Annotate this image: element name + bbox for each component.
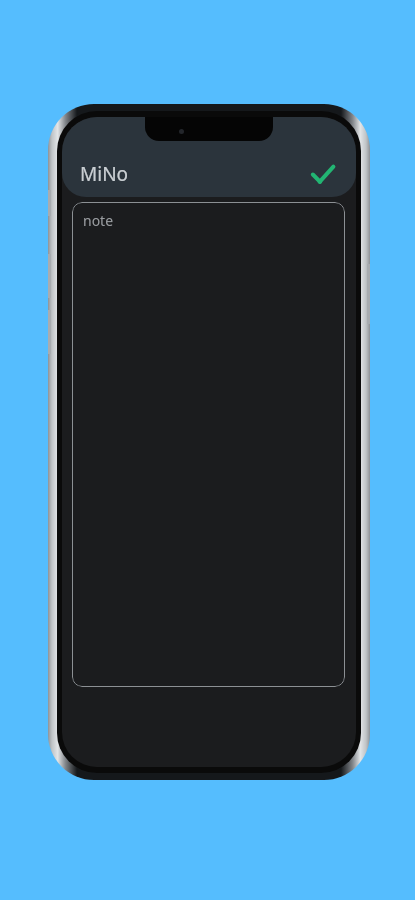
button[interactable]: note: [72, 202, 345, 687]
staticText: note: [83, 211, 114, 230]
button[interactable]: Save note: [304, 155, 342, 193]
staticText: MiNo: [80, 161, 129, 187]
